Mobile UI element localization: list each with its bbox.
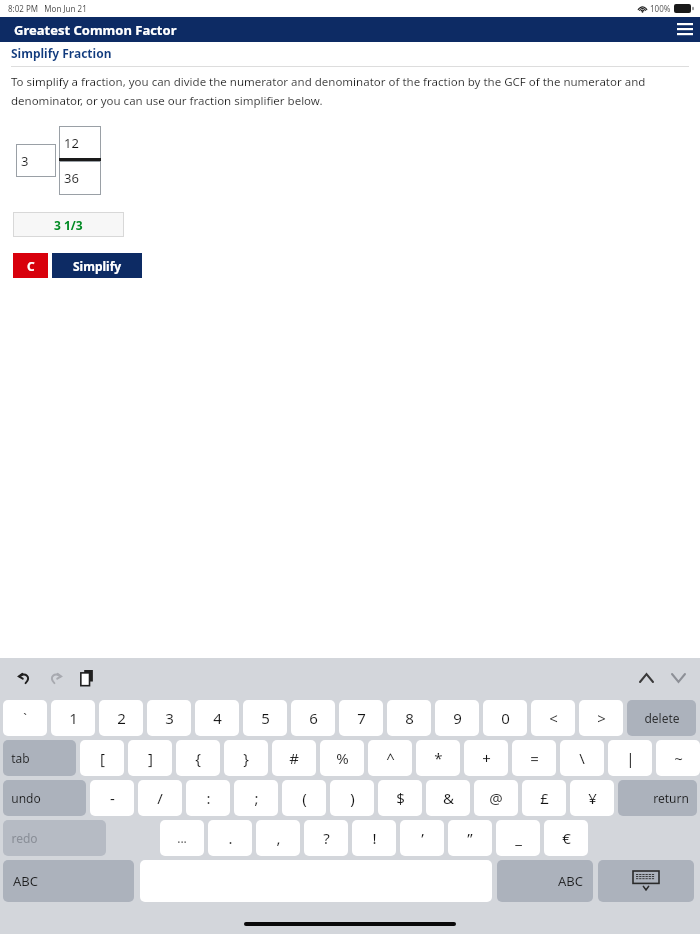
button[interactable]: * — [416, 740, 460, 776]
button[interactable]: : — [186, 780, 230, 816]
button[interactable]: ( — [282, 780, 326, 816]
button[interactable]: 9 — [435, 700, 479, 736]
button[interactable]: 3 — [16, 144, 56, 177]
button[interactable]: undo — [3, 780, 86, 816]
staticText: ! — [372, 828, 377, 848]
button[interactable]: 12 — [59, 126, 101, 160]
button[interactable]: ¥ — [570, 780, 614, 816]
button[interactable]: redo — [3, 820, 106, 856]
button[interactable]: € — [544, 820, 588, 856]
staticText: : — [206, 788, 211, 808]
button[interactable]: 3 — [147, 700, 191, 736]
button[interactable]: return — [618, 780, 697, 816]
button[interactable]: % — [320, 740, 364, 776]
staticText: { — [195, 748, 201, 768]
button[interactable]: ? — [304, 820, 348, 856]
staticText: + — [482, 748, 491, 768]
staticText: / — [157, 788, 163, 808]
staticText: | — [626, 748, 635, 768]
button[interactable]: ` — [3, 700, 47, 736]
button[interactable]: & — [426, 780, 470, 816]
button[interactable]: ABC — [3, 860, 134, 902]
button[interactable]: 8 — [387, 700, 431, 736]
button[interactable]: - — [90, 780, 134, 816]
button[interactable]: ABC — [497, 860, 593, 902]
button[interactable]: ... — [160, 820, 204, 856]
button[interactable]: | — [608, 740, 652, 776]
button[interactable]: £ — [522, 780, 566, 816]
staticText: . — [228, 828, 233, 848]
staticText: ABC — [13, 872, 38, 890]
button[interactable]: ^ — [368, 740, 412, 776]
button[interactable]: ) — [330, 780, 374, 816]
staticText: return — [653, 790, 689, 806]
button[interactable]: / — [138, 780, 182, 816]
button[interactable]: , — [256, 820, 300, 856]
staticText: € — [562, 828, 571, 848]
staticText: 100% — [650, 3, 671, 14]
button[interactable]: 6 — [291, 700, 335, 736]
button[interactable]: > — [579, 700, 623, 736]
staticText: redo — [11, 830, 38, 846]
staticText: 2 — [117, 708, 126, 728]
button[interactable]: Simplify — [52, 253, 142, 278]
button[interactable]: { — [176, 740, 220, 776]
staticText: 9 — [453, 708, 462, 728]
staticText: Simplify — [73, 258, 122, 274]
button[interactable]: < — [531, 700, 575, 736]
button[interactable]: _ — [496, 820, 540, 856]
button[interactable]: } — [224, 740, 268, 776]
button[interactable]: Paste — [73, 664, 101, 692]
staticText: 5 — [261, 708, 270, 728]
button[interactable]: . — [208, 820, 252, 856]
button[interactable]: # — [272, 740, 316, 776]
button[interactable]: Hide keyboard — [598, 860, 694, 902]
button[interactable]: [ — [80, 740, 124, 776]
staticText: 6 — [309, 708, 318, 728]
staticText: } — [243, 748, 249, 768]
staticText: £ — [540, 788, 549, 808]
button[interactable]: ] — [128, 740, 172, 776]
button[interactable]: 1 — [51, 700, 95, 736]
button[interactable]: ; — [234, 780, 278, 816]
button[interactable]: C — [13, 253, 48, 278]
button[interactable]: ! — [352, 820, 396, 856]
button[interactable]: Redo — [42, 664, 70, 692]
staticText: tab — [11, 750, 30, 766]
staticText: - — [110, 788, 115, 808]
button[interactable]: Menu — [670, 17, 700, 42]
button[interactable]: Undo — [10, 664, 38, 692]
button[interactable]: 0 — [483, 700, 527, 736]
button[interactable]: 7 — [339, 700, 383, 736]
button[interactable]: Next field — [664, 664, 692, 692]
button[interactable]: ” — [448, 820, 492, 856]
button[interactable]: ’ — [400, 820, 444, 856]
button[interactable]: ~ — [656, 740, 700, 776]
staticText: , — [276, 828, 281, 848]
button[interactable]: $ — [378, 780, 422, 816]
staticText: 12 — [64, 134, 79, 152]
staticText: Simplify Fraction — [11, 45, 112, 61]
button[interactable]: @ — [474, 780, 518, 816]
button[interactable]: delete — [627, 700, 696, 736]
staticText: [ — [100, 748, 105, 768]
button[interactable]: 5 — [243, 700, 287, 736]
button[interactable]: tab — [3, 740, 76, 776]
button[interactable]: + — [464, 740, 508, 776]
staticText: ? — [323, 828, 330, 848]
button[interactable]: 2 — [99, 700, 143, 736]
button[interactable]: Previous field — [632, 664, 660, 692]
staticText: < — [549, 708, 558, 728]
staticText: 3 — [165, 708, 174, 728]
button[interactable]: 36 — [59, 161, 101, 195]
staticText: To simplify a fraction, you can divide t… — [11, 74, 687, 108]
button[interactable]: 4 — [195, 700, 239, 736]
staticText: > — [597, 708, 606, 728]
button[interactable]: \ — [560, 740, 604, 776]
staticText: ) — [350, 788, 355, 808]
staticText: _ — [515, 828, 522, 848]
staticText: 7 — [357, 708, 366, 728]
staticText: 0 — [501, 708, 510, 728]
button[interactable]: = — [512, 740, 556, 776]
